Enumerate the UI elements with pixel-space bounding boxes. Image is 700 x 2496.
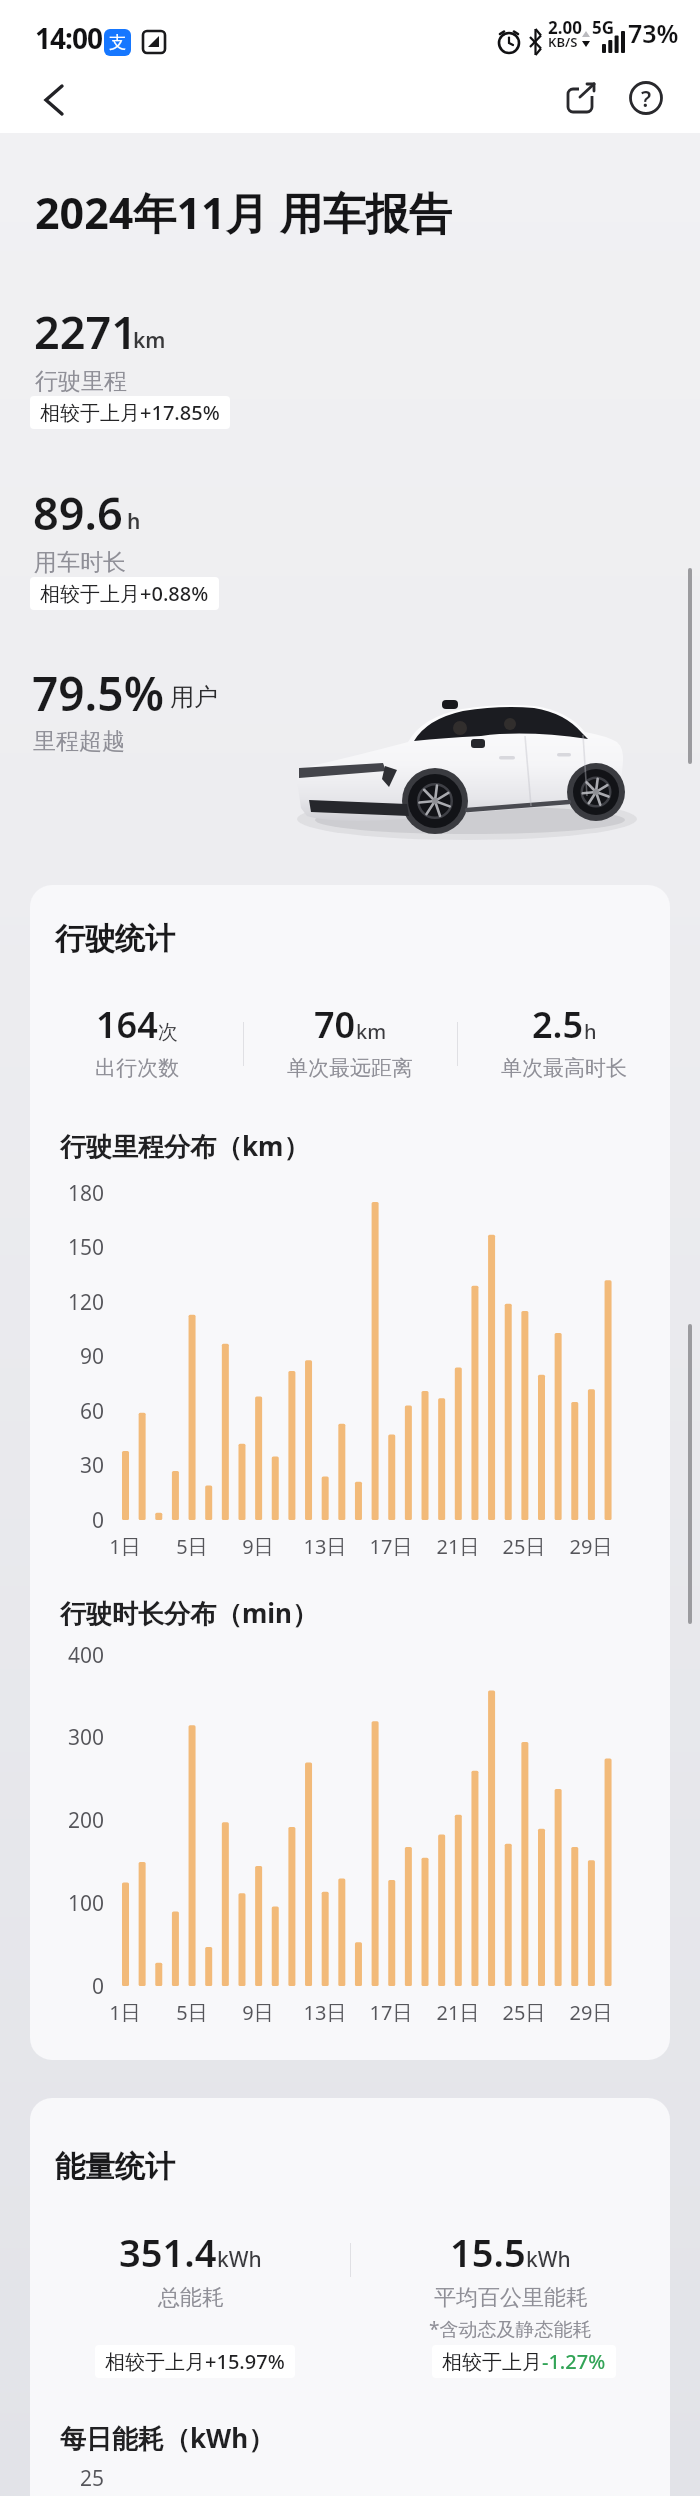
staticText: 用车时长: [34, 548, 126, 577]
staticText: 90: [30, 1342, 104, 1371]
staticText: 60: [30, 1397, 104, 1426]
staticText: 5日: [162, 1999, 222, 2026]
staticText: 相较于上月+17.85%: [40, 399, 220, 426]
staticText: 每日能耗（kWh）: [60, 2420, 275, 2456]
staticText: 300: [30, 1723, 104, 1752]
staticText: 120: [30, 1288, 104, 1317]
staticText: 25日: [494, 1533, 554, 1560]
staticText: 1日: [95, 1999, 155, 2026]
staticText: 13日: [295, 1533, 355, 1560]
staticText: 164: [96, 1000, 158, 1049]
staticText: 89.6: [33, 482, 123, 543]
staticText: 平均百公里能耗: [434, 2284, 588, 2312]
staticText: 17日: [361, 1999, 421, 2026]
staticText: 351.4: [119, 2226, 217, 2278]
staticText: h: [127, 507, 141, 536]
staticText: 出行次数: [95, 1055, 179, 1081]
staticText: km: [133, 326, 166, 355]
staticText: 次: [158, 1020, 178, 1045]
staticText: 相较于上月+15.97%: [105, 2348, 285, 2375]
staticText: 里程超越: [33, 727, 125, 756]
staticText: 支: [109, 32, 126, 53]
staticText: 0: [30, 1972, 104, 2001]
staticText: 100: [30, 1889, 104, 1918]
staticText: 行驶时长分布（min）: [60, 1595, 319, 1631]
staticText: 2.00: [548, 16, 582, 39]
staticText: 总能耗: [158, 2284, 224, 2312]
staticText: 14:00: [35, 19, 102, 57]
staticText: 行驶里程: [35, 367, 127, 396]
staticText: 17日: [361, 1533, 421, 1560]
staticText: 400: [30, 1641, 104, 1670]
staticText: KB/S: [548, 33, 578, 51]
staticText: 200: [30, 1806, 104, 1835]
staticText: 9日: [228, 1533, 288, 1560]
staticText: 180: [30, 1179, 104, 1208]
staticText: 150: [30, 1233, 104, 1262]
staticText: 能量统计: [55, 2148, 175, 2186]
staticText: 70: [314, 1000, 356, 1049]
staticText: 2.5: [532, 1000, 584, 1049]
button[interactable]: [30, 76, 78, 124]
staticText: 单次最远距离: [287, 1055, 413, 1081]
staticText: *含动态及静态能耗: [429, 2316, 592, 2342]
staticText: h: [584, 1018, 597, 1045]
staticText: 5G: [592, 16, 615, 39]
staticText: 25日: [494, 1999, 554, 2026]
staticText: 用户: [170, 682, 218, 712]
staticText: 29日: [561, 1999, 621, 2026]
staticText: 行驶统计: [55, 920, 175, 958]
staticText: 15.5: [450, 2226, 526, 2278]
staticText: 1日: [95, 1533, 155, 1560]
staticText: 79.5%: [32, 662, 164, 725]
staticText: 21日: [428, 1999, 488, 2026]
staticText: 单次最高时长: [501, 1055, 627, 1081]
staticText: kWh: [526, 2245, 571, 2274]
staticText: 13日: [295, 1999, 355, 2026]
staticText: 21日: [428, 1533, 488, 1560]
staticText: ?: [641, 83, 652, 113]
staticText: 30: [30, 1451, 104, 1480]
staticText: 73%: [628, 16, 679, 50]
staticText: 9日: [228, 1999, 288, 2026]
staticText: 相较于上月+0.88%: [40, 580, 209, 607]
button[interactable]: ?: [622, 74, 670, 122]
staticText: 2271: [34, 301, 137, 362]
staticText: 行驶里程分布（km）: [60, 1128, 310, 1164]
staticText: 0: [30, 1506, 104, 1535]
staticText: 5日: [162, 1533, 222, 1560]
staticText: 25: [30, 2464, 104, 2493]
button[interactable]: [558, 74, 606, 122]
staticText: 29日: [561, 1533, 621, 1560]
staticText: 相较于上月-1.27%: [442, 2348, 606, 2375]
staticText: km: [356, 1018, 387, 1045]
staticText: 2024年11月 用车报告: [35, 183, 452, 242]
staticText: kWh: [217, 2245, 262, 2274]
